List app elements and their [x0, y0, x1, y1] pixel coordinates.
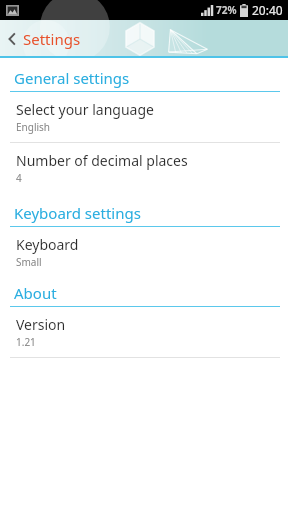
staticText: 4	[16, 171, 22, 185]
staticText: General settings	[14, 68, 130, 88]
staticText: 72%	[216, 3, 237, 17]
staticText: Version	[16, 315, 66, 334]
staticText: Number of decimal places	[16, 151, 188, 170]
staticText: About	[14, 283, 57, 303]
button[interactable]: Select your language	[0, 92, 288, 142]
staticText: Keyboard	[16, 235, 79, 254]
button[interactable]: Version	[0, 307, 288, 357]
staticText: Select your language	[16, 100, 154, 119]
staticText: 20:40	[252, 2, 283, 18]
staticText: 1.21	[16, 335, 36, 349]
button[interactable]: Keyboard	[0, 227, 288, 277]
staticText: Small	[16, 255, 42, 269]
staticText: English	[16, 120, 51, 134]
button[interactable]: Navigate up, Settings	[0, 20, 95, 58]
staticText: Keyboard settings	[14, 203, 141, 223]
button[interactable]: Number of decimal places	[0, 143, 288, 193]
staticText: Settings	[23, 29, 81, 49]
